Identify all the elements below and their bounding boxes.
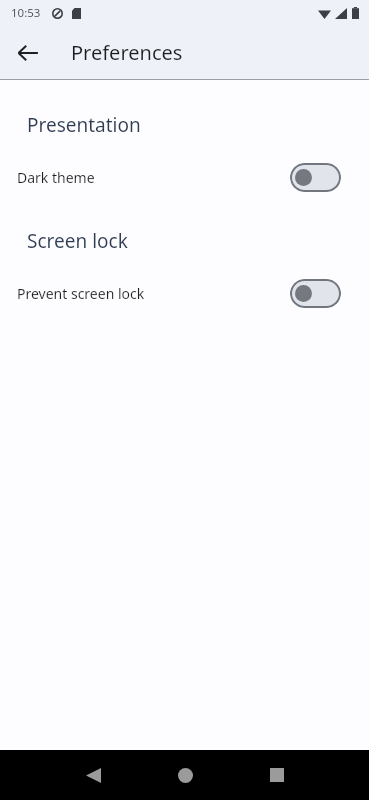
button[interactable]: Back — [6, 31, 50, 75]
staticText: Presentation — [27, 112, 141, 138]
button[interactable]: Recent apps — [231, 750, 323, 800]
button[interactable]: Toggle — [290, 279, 341, 308]
staticText: Preferences — [71, 39, 183, 66]
button[interactable]: Dark theme — [0, 160, 369, 194]
staticText: 10:53 — [11, 5, 41, 21]
button[interactable]: Home — [139, 750, 231, 800]
staticText: Prevent screen lock — [17, 284, 145, 303]
button[interactable]: Prevent screen lock — [0, 276, 369, 310]
staticText: Screen lock — [27, 228, 128, 254]
staticText: Dark theme — [17, 168, 95, 187]
button[interactable]: Back — [47, 750, 139, 800]
button[interactable]: Toggle — [290, 163, 341, 192]
